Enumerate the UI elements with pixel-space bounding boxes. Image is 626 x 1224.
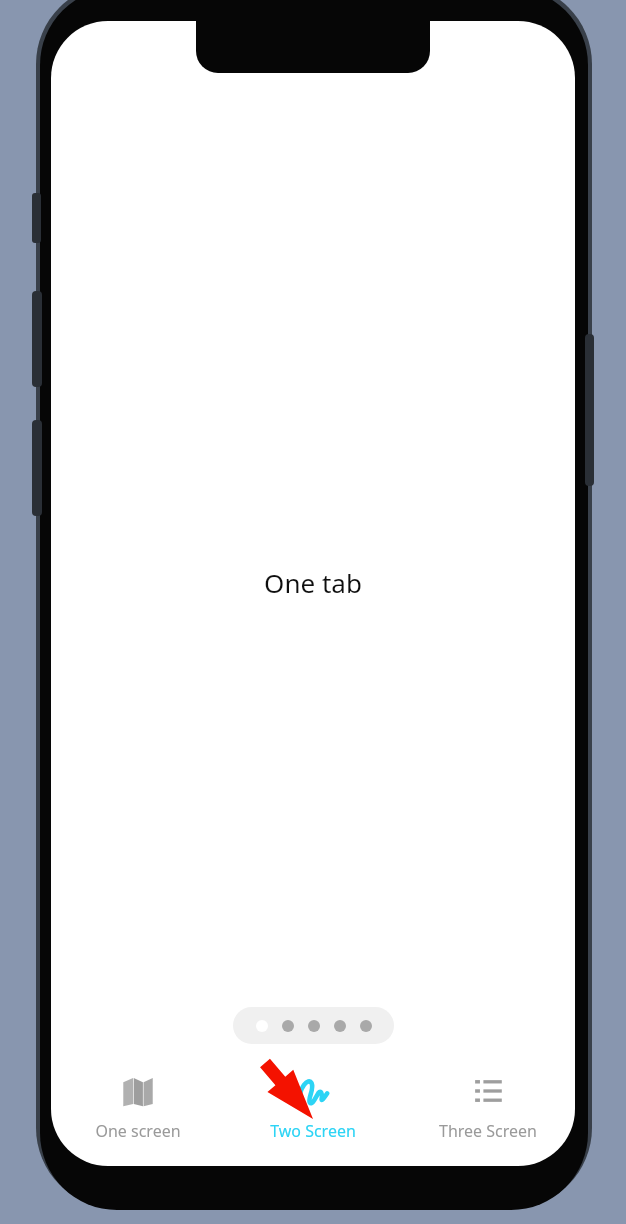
staticText: Two Screen xyxy=(270,1120,356,1142)
staticText: Three Screen xyxy=(439,1120,537,1142)
staticText: One tab xyxy=(264,565,362,600)
button[interactable]: Three Screen xyxy=(400,1064,575,1142)
staticText: One screen xyxy=(95,1120,181,1142)
button[interactable]: Page indicator xyxy=(233,1007,394,1044)
button[interactable]: Two Screen xyxy=(225,1064,400,1142)
button[interactable]: One screen xyxy=(51,1064,225,1142)
